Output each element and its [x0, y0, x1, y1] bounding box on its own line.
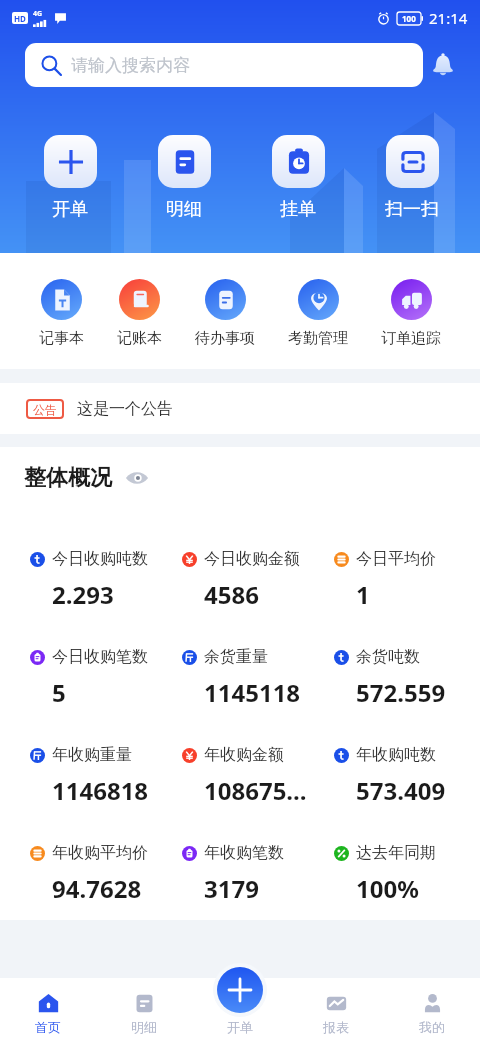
staticText: 100%	[356, 872, 419, 905]
staticText: 待办事项	[195, 329, 255, 348]
button[interactable]: 待办事项	[195, 279, 255, 348]
staticText: 请输入搜索内容	[71, 55, 190, 76]
button[interactable]: 年收购平均价	[30, 822, 182, 920]
staticText: 这是一个公告	[77, 399, 173, 419]
button[interactable]: 报表	[288, 986, 384, 1040]
button[interactable]: 记账本	[117, 279, 162, 348]
staticText: 考勤管理	[288, 329, 348, 348]
staticText: 年收购吨数	[356, 745, 436, 765]
button[interactable]: 记事本	[39, 279, 84, 348]
staticText: 今日平均价	[356, 549, 436, 569]
staticText: 年收购金额	[204, 745, 284, 765]
button[interactable]: 今日收购笔数	[30, 626, 182, 724]
staticText: 开单	[52, 198, 88, 221]
staticText: 4G	[33, 9, 43, 19]
staticText: 4586	[204, 578, 259, 611]
button[interactable]: Toggle visibility	[124, 465, 150, 491]
staticText: 记事本	[39, 329, 84, 348]
staticText: 记账本	[117, 329, 162, 348]
button[interactable]: 我的	[384, 986, 480, 1040]
button[interactable]: 挂单	[241, 135, 355, 221]
button[interactable]: 今日收购吨数	[30, 528, 182, 626]
button[interactable]: 年收购金额	[182, 724, 334, 822]
button[interactable]: 开单	[192, 986, 288, 1040]
staticText: 公告	[33, 402, 57, 417]
button[interactable]: 明细	[96, 986, 192, 1040]
staticText: 1	[356, 578, 370, 611]
button[interactable]: 年收购笔数	[182, 822, 334, 920]
staticText: 1146818	[52, 774, 149, 807]
button[interactable]: Add order	[217, 967, 263, 1013]
button[interactable]: 考勤管理	[288, 279, 348, 348]
button[interactable]: 公告	[0, 383, 480, 434]
staticText: 余货吨数	[356, 647, 420, 667]
staticText: 挂单	[280, 198, 316, 221]
button[interactable]: 余货重量	[182, 626, 334, 724]
button[interactable]: 今日平均价	[334, 528, 480, 626]
staticText: 94.7628	[52, 872, 142, 905]
button[interactable]: 年收购重量	[30, 724, 182, 822]
button[interactable]: Notifications	[428, 50, 458, 80]
button[interactable]: 扫一扫	[355, 135, 469, 221]
staticText: 108675...	[204, 774, 307, 807]
button[interactable]: 达去年同期	[334, 822, 480, 920]
staticText: 今日收购笔数	[52, 647, 148, 667]
staticText: 年收购平均价	[52, 843, 148, 863]
staticText: 开单	[227, 1019, 253, 1035]
staticText: 明细	[131, 1019, 157, 1035]
staticText: 5	[52, 676, 66, 709]
button[interactable]: 明细	[127, 135, 241, 221]
button[interactable]: 首页	[0, 986, 96, 1040]
button[interactable]: 请输入搜索内容	[25, 43, 423, 87]
button[interactable]: 年收购吨数	[334, 724, 480, 822]
staticText: 我的	[419, 1019, 445, 1035]
staticText: 3179	[204, 872, 259, 905]
button[interactable]: 今日收购金额	[182, 528, 334, 626]
staticText: 今日收购吨数	[52, 549, 148, 569]
staticText: 明细	[166, 198, 202, 221]
staticText: 扫一扫	[385, 198, 439, 221]
staticText: 572.559	[356, 676, 446, 709]
button[interactable]: 余货吨数	[334, 626, 480, 724]
button[interactable]: 订单追踪	[381, 279, 441, 348]
button[interactable]: 开单	[13, 135, 127, 221]
staticText: 达去年同期	[356, 843, 436, 863]
staticText: 整体概况	[24, 464, 112, 492]
staticText: 年收购笔数	[204, 843, 284, 863]
staticText: 573.409	[356, 774, 446, 807]
staticText: HD	[14, 13, 26, 24]
staticText: 1145118	[204, 676, 301, 709]
staticText: 21:14	[429, 8, 468, 28]
staticText: 首页	[35, 1019, 61, 1035]
staticText: 今日收购金额	[204, 549, 300, 569]
staticText: 2.293	[52, 578, 114, 611]
staticText: 100	[402, 13, 416, 24]
staticText: 年收购重量	[52, 745, 132, 765]
staticText: 报表	[323, 1019, 349, 1035]
staticText: 订单追踪	[381, 329, 441, 348]
staticText: 余货重量	[204, 647, 268, 667]
